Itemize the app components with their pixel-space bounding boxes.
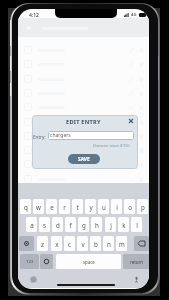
button[interactable]: [18, 157, 149, 171]
button[interactable]: v: [77, 236, 88, 251]
button[interactable]: [18, 243, 149, 257]
button[interactable]: Emoji: [40, 254, 53, 269]
button[interactable]: y: [85, 199, 96, 214]
staticText: n: [107, 240, 111, 248]
staticText: r: [63, 203, 66, 211]
button[interactable]: c: [64, 236, 75, 251]
button[interactable]: s: [39, 217, 50, 232]
staticText: y: [89, 203, 93, 211]
button[interactable]: x: [51, 236, 62, 251]
button[interactable]: 123: [20, 254, 39, 269]
button[interactable]: Dictate: [133, 276, 140, 283]
staticText: b: [94, 240, 98, 248]
button[interactable]: chargers: [48, 131, 134, 140]
button[interactable]: f: [65, 217, 76, 232]
staticText: a: [30, 221, 34, 229]
staticText: h: [95, 221, 99, 229]
button[interactable]: m: [116, 236, 127, 251]
button[interactable]: return: [123, 254, 149, 269]
button[interactable]: SAVE: [68, 154, 100, 164]
button[interactable]: k: [118, 217, 129, 232]
button[interactable]: Backspace: [134, 236, 149, 251]
button[interactable]: [18, 258, 149, 272]
staticText: 4:12: [29, 12, 39, 19]
button[interactable]: t: [72, 199, 83, 214]
button[interactable]: w: [33, 199, 44, 214]
staticText: s: [43, 221, 46, 229]
staticText: v: [81, 240, 85, 248]
staticText: Entry:: [33, 134, 46, 140]
button[interactable]: j: [105, 217, 116, 232]
staticText: f: [69, 221, 72, 229]
staticText: g: [82, 221, 86, 229]
staticText: c: [68, 240, 71, 248]
staticText: Character count: 8/100: [93, 143, 130, 148]
button[interactable]: [18, 215, 149, 229]
staticText: w: [36, 203, 41, 211]
button[interactable]: [18, 186, 149, 200]
button[interactable]: o: [124, 199, 135, 214]
staticText: space: [83, 259, 95, 265]
button[interactable]: r: [59, 199, 70, 214]
button[interactable]: Close dialog: [126, 116, 136, 126]
staticText: x: [55, 240, 59, 248]
button[interactable]: d: [52, 217, 63, 232]
button[interactable]: i: [111, 199, 122, 214]
staticText: p: [141, 203, 145, 211]
button[interactable]: space: [56, 254, 121, 269]
staticText: chargers: [50, 132, 71, 139]
button[interactable]: Shift: [19, 236, 34, 251]
button[interactable]: e: [46, 199, 57, 214]
staticText: d: [56, 221, 60, 229]
staticText: j: [110, 221, 112, 229]
button[interactable]: u: [98, 199, 109, 214]
button[interactable]: [18, 115, 149, 129]
staticText: o: [128, 203, 132, 211]
staticText: u: [102, 203, 106, 211]
staticText: l: [136, 221, 138, 229]
staticText: m: [119, 240, 125, 248]
button[interactable]: g: [78, 217, 89, 232]
staticText: EDIT ENTRY: [66, 118, 101, 126]
button[interactable]: l: [131, 217, 142, 232]
staticText: 4G: [131, 12, 137, 18]
button[interactable]: [18, 229, 149, 243]
staticText: q: [24, 203, 28, 211]
staticText: t: [76, 203, 79, 211]
button[interactable]: [18, 129, 149, 143]
button[interactable]: h: [91, 217, 102, 232]
button[interactable]: z: [37, 236, 48, 251]
staticText: e: [50, 203, 54, 211]
button[interactable]: [18, 200, 149, 214]
button[interactable]: Switch keyboard: [30, 276, 37, 283]
staticText: SAVE: [78, 156, 90, 163]
button[interactable]: b: [90, 236, 101, 251]
button[interactable]: [18, 143, 149, 157]
button[interactable]: p: [137, 199, 148, 214]
staticText: i: [116, 203, 118, 211]
staticText: return: [130, 259, 144, 265]
button[interactable]: q: [20, 199, 31, 214]
button[interactable]: a: [26, 217, 37, 232]
button[interactable]: [18, 172, 149, 186]
staticText: 123: [26, 259, 34, 265]
button[interactable]: n: [103, 236, 114, 251]
staticText: z: [41, 240, 44, 248]
staticText: k: [122, 221, 126, 229]
